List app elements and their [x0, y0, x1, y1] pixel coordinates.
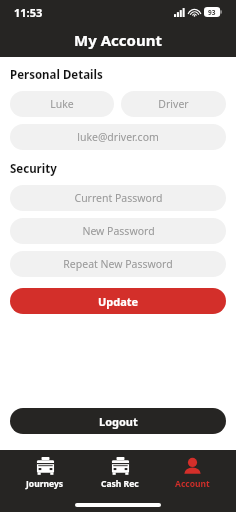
staticText: luke@driver.com	[77, 130, 159, 144]
button[interactable]: Journeys	[16, 455, 74, 492]
staticText: Luke	[50, 97, 74, 111]
staticText: Current Password	[74, 191, 163, 205]
button[interactable]: Cash Rec	[91, 455, 149, 492]
staticText: Account	[175, 478, 210, 490]
button[interactable]: Account	[165, 455, 220, 492]
button[interactable]: New Password	[10, 218, 226, 244]
button[interactable]: Driver	[121, 91, 226, 117]
staticText: Driver	[158, 97, 189, 111]
staticText: 11:53	[14, 5, 43, 20]
staticText: 93	[208, 8, 216, 17]
staticText: Security	[10, 161, 57, 177]
staticText: Logout	[99, 414, 138, 429]
staticText: New Password	[82, 224, 155, 238]
staticText: Update	[98, 294, 139, 309]
button[interactable]: Update	[10, 288, 226, 314]
button[interactable]: Logout	[10, 408, 226, 434]
button[interactable]: luke@driver.com	[10, 124, 226, 150]
button[interactable]: Repeat New Password	[10, 251, 226, 277]
button[interactable]: Current Password	[10, 185, 226, 211]
staticText: Repeat New Password	[63, 257, 173, 271]
staticText: Personal Details	[10, 67, 103, 83]
staticText: Cash Rec	[101, 478, 139, 490]
staticText: Journeys	[26, 478, 64, 490]
button[interactable]: Luke	[10, 91, 114, 117]
staticText: My Account	[0, 30, 236, 50]
